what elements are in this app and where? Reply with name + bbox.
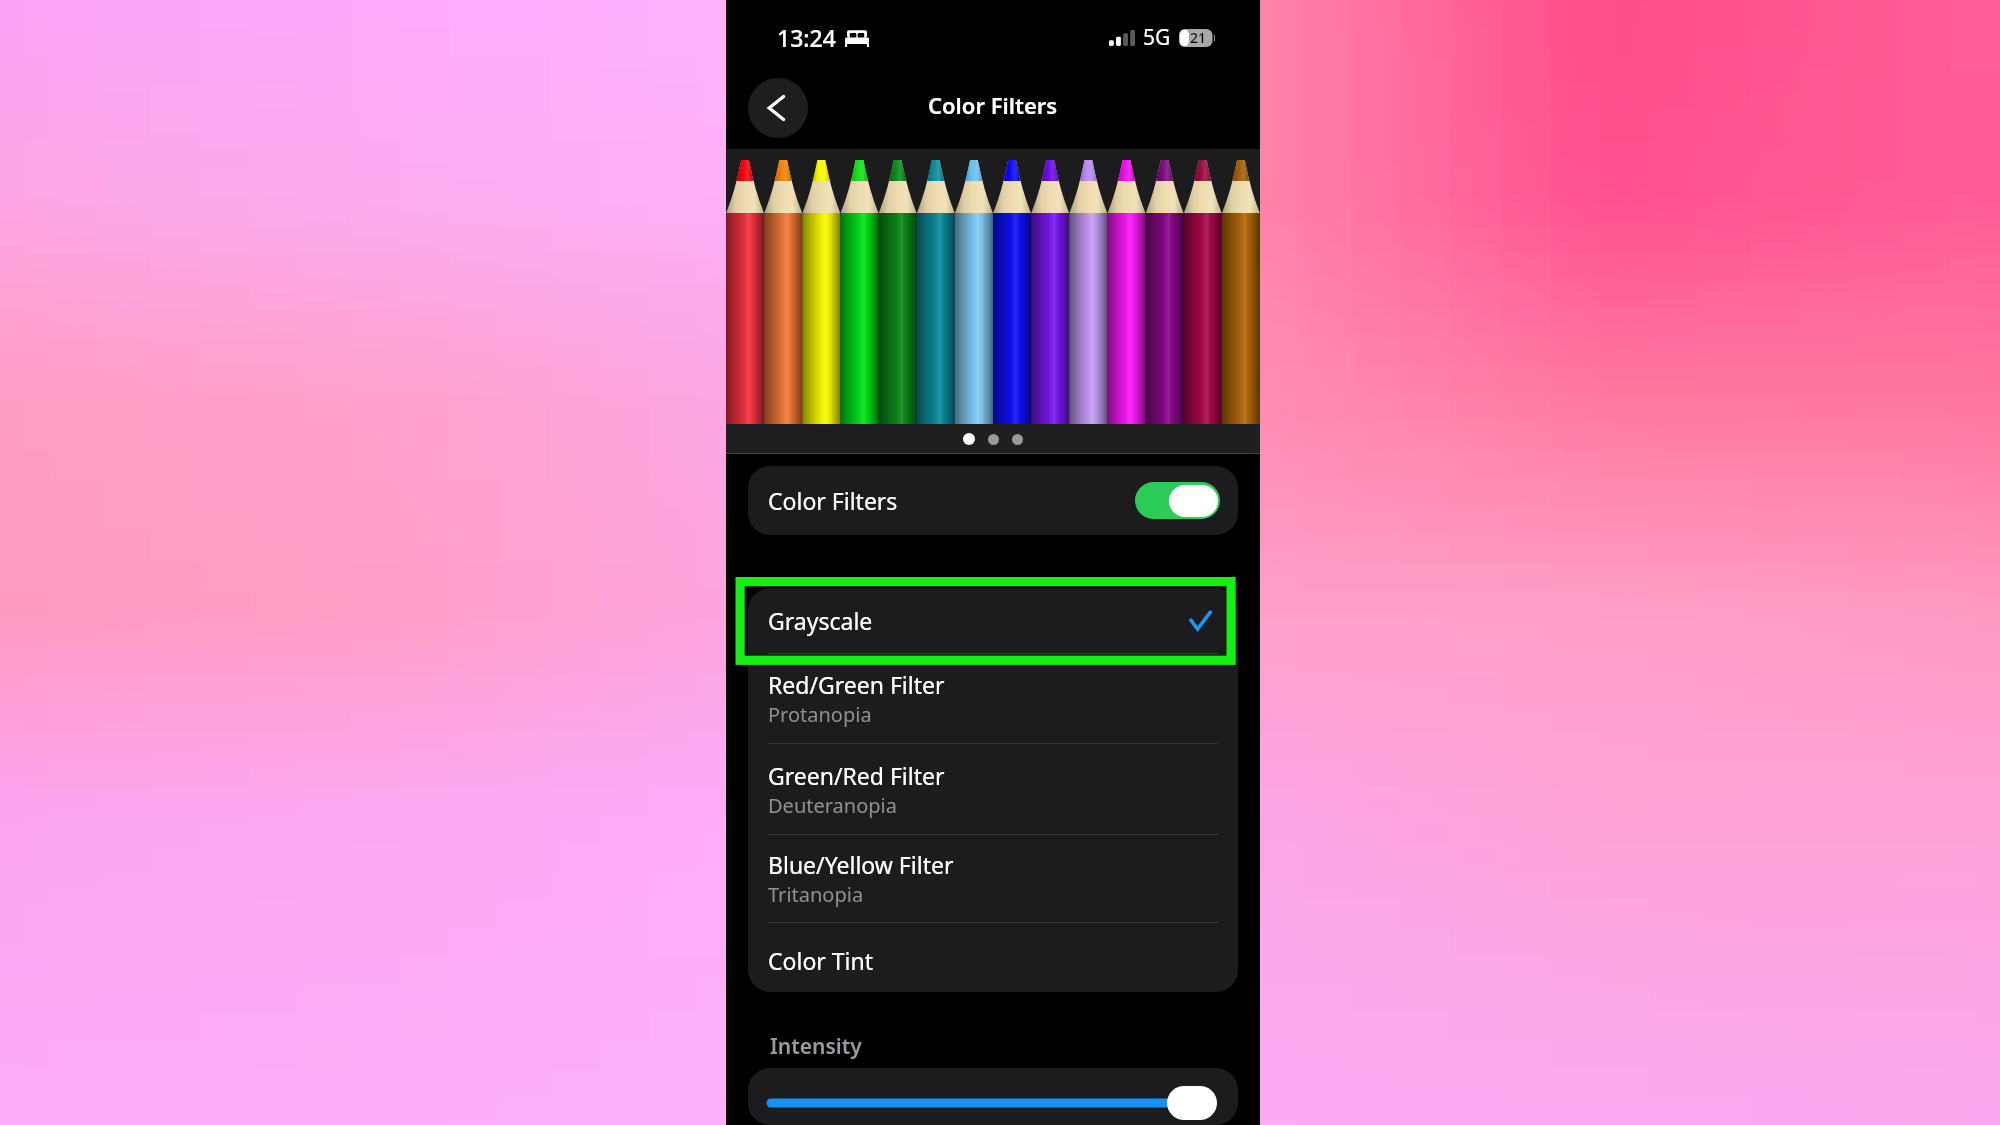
button[interactable]: Color Filters [748, 466, 1238, 535]
button[interactable]: Page 1 [963, 433, 975, 445]
button[interactable]: Page 3 [1012, 434, 1023, 445]
button[interactable]: Color Filters on [1135, 482, 1220, 519]
button[interactable]: Blue/Yellow Filter [748, 835, 1238, 922]
staticText: Intensity [770, 1032, 862, 1061]
staticText: Red/Green Filter [768, 669, 945, 700]
staticText: 5G [1143, 23, 1171, 52]
staticText: Blue/Yellow Filter [768, 849, 954, 880]
button[interactable]: Intensity slider [748, 1068, 1238, 1125]
button[interactable]: Red/Green Filter [748, 654, 1238, 743]
staticText: Color Tint [768, 945, 874, 976]
button[interactable]: Green/Red Filter [748, 744, 1238, 834]
button[interactable]: Color Tint [748, 923, 1238, 992]
staticText: Tritanopia [768, 881, 864, 908]
staticText: Color Filters [928, 90, 1058, 120]
staticText: Color Filters [768, 485, 898, 516]
button[interactable]: Grayscale [748, 588, 1238, 653]
staticText: 13:24 [777, 22, 836, 53]
button[interactable]: Back [748, 78, 808, 138]
staticText: Protanopia [768, 701, 872, 728]
staticText: Deuteranopia [768, 792, 897, 819]
staticText: 21 [1190, 28, 1207, 47]
staticText: Green/Red Filter [768, 760, 945, 791]
staticText: Grayscale [768, 605, 873, 636]
button[interactable]: Page 2 [988, 434, 999, 445]
